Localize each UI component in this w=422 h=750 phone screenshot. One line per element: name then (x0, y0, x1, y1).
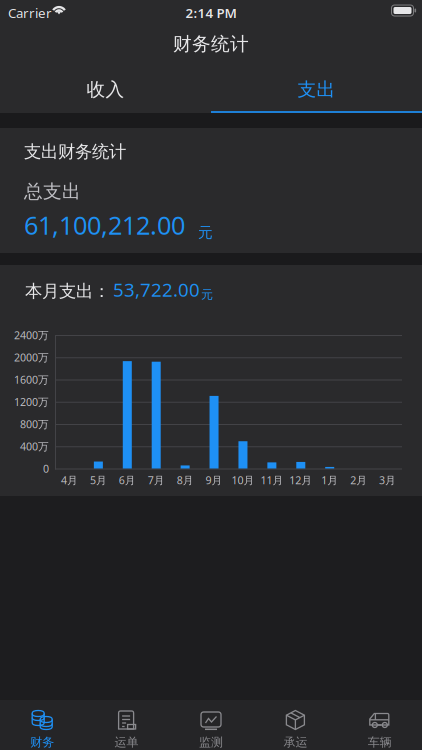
staticText: 6月 (119, 473, 136, 487)
staticText: 运单 (115, 735, 139, 750)
staticText: 监测 (199, 735, 223, 750)
staticText: 收入 (86, 78, 124, 101)
staticText: 0 (43, 461, 49, 476)
button[interactable]: 车辆 (338, 699, 422, 750)
staticText: 元 (198, 224, 213, 242)
staticText: 1月 (321, 473, 338, 487)
staticText: 53,722.00 (113, 277, 200, 302)
staticText: 财务 (30, 735, 54, 750)
staticText: 2400万 (14, 328, 49, 342)
staticText: 800万 (20, 417, 49, 431)
staticText: Carrier (8, 4, 52, 22)
staticText: 承运 (283, 735, 307, 750)
button[interactable]: 收入 (0, 66, 211, 113)
staticText: 10月 (231, 473, 254, 487)
button[interactable]: 支出 (211, 66, 422, 113)
staticText: 9月 (205, 473, 222, 487)
staticText: 元 (201, 287, 213, 302)
staticText: 支出 (297, 78, 335, 101)
button[interactable]: 运单 (84, 699, 169, 750)
staticText: 2000万 (14, 350, 49, 364)
staticText: 3月 (379, 473, 396, 487)
staticText: 1200万 (14, 395, 49, 409)
staticText: 11月 (260, 473, 283, 487)
staticText: 财务统计 (173, 32, 249, 55)
staticText: 12月 (289, 473, 312, 487)
staticText: 4月 (61, 473, 78, 487)
staticText: 5月 (90, 473, 107, 487)
button[interactable]: 承运 (253, 699, 338, 750)
staticText: 总支出 (24, 180, 81, 203)
staticText: 本月支出： (25, 280, 110, 302)
staticText: 400万 (20, 439, 49, 453)
button[interactable]: 财务 (0, 699, 84, 750)
staticText: 61,100,212.00 (24, 208, 185, 242)
staticText: 2:14 PM (185, 4, 236, 22)
staticText: 1600万 (14, 372, 49, 387)
staticText: 7月 (148, 473, 165, 487)
staticText: 支出财务统计 (24, 141, 126, 162)
staticText: 2月 (350, 473, 367, 487)
staticText: 8月 (177, 473, 194, 487)
button[interactable]: 监测 (169, 699, 253, 750)
staticText: 车辆 (368, 735, 392, 750)
